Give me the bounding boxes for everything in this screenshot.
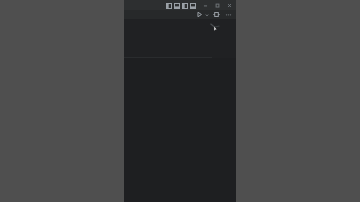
button[interactable]: Minimize (201, 1, 209, 10)
button[interactable]: Left panel layout (165, 2, 172, 10)
button[interactable]: Editor cursor (210, 23, 220, 33)
button[interactable]: Close (225, 1, 233, 10)
button[interactable]: Debug (212, 10, 221, 19)
button[interactable]: Bottom panel layout (173, 2, 180, 10)
button[interactable]: Right panel layout (181, 2, 188, 10)
button[interactable]: More options (224, 10, 233, 19)
button[interactable]: Full layout (189, 2, 196, 10)
button[interactable]: Maximize (213, 1, 221, 10)
button[interactable]: Run (195, 10, 204, 19)
